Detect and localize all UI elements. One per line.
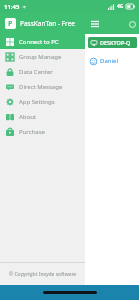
button[interactable]: Data Center [0, 64, 85, 79]
staticText: Data Center [19, 68, 53, 76]
staticText: Direct Message [19, 83, 63, 91]
button[interactable]: Open navigation drawer [89, 18, 100, 29]
staticText: About [19, 113, 37, 121]
staticText: DESKTOP-Q [100, 39, 131, 46]
staticText: Daniel [100, 57, 118, 65]
button[interactable]: App Settings [0, 94, 85, 109]
staticText: © Copyright Insyde software [9, 271, 77, 278]
staticText: Purchase [19, 128, 45, 136]
button[interactable]: About [0, 109, 85, 124]
staticText: PassKanTan - Free [20, 19, 75, 28]
button[interactable]: More options [127, 19, 137, 29]
staticText: P [8, 19, 13, 29]
button[interactable]: DESKTOP-Q [88, 37, 137, 48]
button[interactable]: P [0, 13, 85, 34]
staticText: App Settings [19, 98, 55, 106]
button[interactable]: Direct Message [0, 79, 85, 94]
staticText: Group Manage [19, 53, 62, 61]
button[interactable]: Purchase [0, 124, 85, 139]
button[interactable]: Daniel [85, 55, 139, 67]
button[interactable]: Connect to PC [0, 34, 85, 49]
button[interactable]: Group Manage [0, 49, 85, 64]
staticText: 4G [117, 3, 124, 10]
staticText: Connect to PC [19, 38, 59, 46]
staticText: 11:45 [4, 3, 20, 11]
